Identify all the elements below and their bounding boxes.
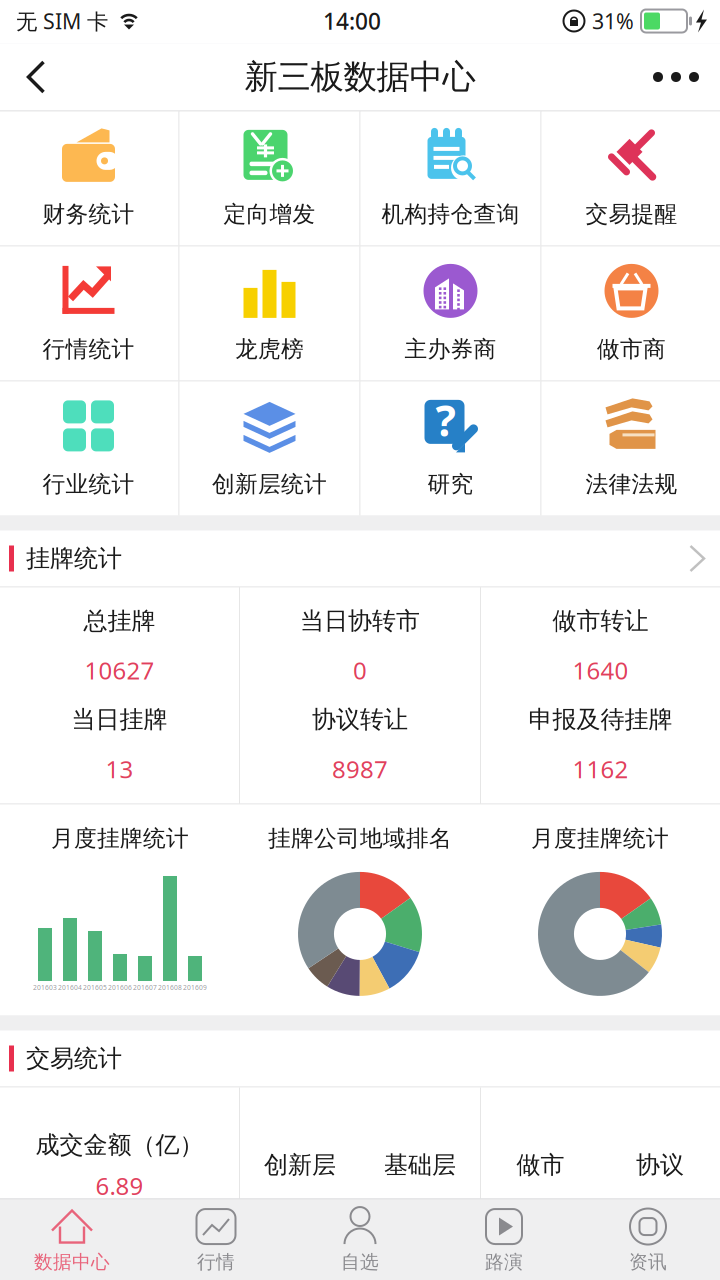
staticText: 总挂牌 [83, 606, 155, 636]
staticText: 做市商 [597, 335, 666, 363]
staticText: 行情 [197, 1250, 235, 1273]
button[interactable]: 交易统计 [0, 1030, 720, 1086]
button[interactable]: 资讯 [576, 1199, 720, 1280]
staticText: 行情统计 [42, 335, 134, 363]
staticText: 无 SIM 卡 [16, 7, 108, 35]
staticText: 财务统计 [42, 200, 134, 228]
staticText: 201604 [58, 983, 82, 992]
staticText: 申报及待挂牌 [528, 705, 672, 734]
staticText: 201609 [183, 983, 207, 992]
staticText: 6.89 [95, 1170, 143, 1201]
button[interactable]: 创新层统计 [179, 381, 359, 515]
button[interactable]: 数据中心 [0, 1199, 144, 1280]
button[interactable]: 机构持仓查询 [360, 111, 540, 245]
staticText: 201608 [158, 983, 182, 992]
staticText: 1162 [572, 753, 628, 785]
button[interactable]: 交易提醒 [541, 111, 720, 245]
staticText: 当日协转市 [300, 606, 420, 636]
staticText: 交易统计 [26, 1044, 122, 1073]
button[interactable]: 法律法规 [541, 381, 720, 515]
button[interactable]: 挂牌统计 [0, 530, 720, 586]
button[interactable]: 行情 [144, 1199, 288, 1280]
staticText: 成交金额（亿） [35, 1130, 203, 1160]
staticText: 定向增发 [223, 200, 315, 228]
staticText: 14:00 [323, 6, 381, 36]
staticText: 主办券商 [404, 335, 496, 363]
staticText: 1640 [572, 654, 628, 686]
staticText: 挂牌公司地域排名 [268, 824, 452, 852]
staticText: 0 [353, 654, 367, 686]
staticText: 8987 [332, 753, 388, 785]
staticText: 201605 [83, 983, 107, 992]
staticText: 协议 [636, 1150, 684, 1180]
staticText: 201606 [108, 983, 132, 992]
staticText: 月度挂牌统计 [531, 824, 669, 852]
staticText: 行业统计 [42, 470, 134, 498]
button[interactable]: 行业统计 [0, 381, 178, 515]
staticText: 当日挂牌 [71, 705, 167, 734]
staticText: 自选 [341, 1250, 379, 1273]
staticText: 交易提醒 [585, 200, 677, 228]
staticText: 做市 [516, 1150, 564, 1180]
staticText: 法律法规 [585, 470, 677, 498]
button[interactable]: 自选 [288, 1199, 432, 1280]
staticText: 10627 [84, 654, 154, 686]
staticText: 新三板数据中心 [244, 56, 475, 97]
staticText: 201603 [33, 983, 57, 992]
button[interactable]: 返回 [0, 43, 72, 110]
staticText: 创新层统计 [212, 470, 327, 498]
staticText: ? [435, 392, 455, 448]
staticText: 路演 [485, 1250, 523, 1273]
button[interactable]: 主办券商 [360, 246, 540, 380]
staticText: 201607 [133, 983, 157, 992]
staticText: 龙虎榜 [235, 335, 304, 363]
staticText: 31% [592, 7, 634, 35]
staticText: 创新层 [264, 1150, 336, 1180]
button[interactable]: 龙虎榜 [179, 246, 359, 380]
button[interactable]: 定向增发 [179, 111, 359, 245]
staticText: 机构持仓查询 [381, 200, 519, 228]
staticText: 资讯 [629, 1250, 667, 1273]
button[interactable]: ? [360, 381, 540, 515]
staticText: 做市转让 [552, 606, 648, 636]
staticText: 研究 [427, 470, 473, 498]
button[interactable]: 财务统计 [0, 111, 178, 245]
button[interactable]: 做市商 [541, 246, 720, 380]
button[interactable]: 路演 [432, 1199, 576, 1280]
staticText: 挂牌统计 [26, 544, 122, 573]
staticText: 数据中心 [34, 1250, 110, 1273]
staticText: 13 [105, 753, 133, 785]
staticText: 月度挂牌统计 [51, 824, 189, 852]
button[interactable]: 更多 [632, 43, 720, 110]
button[interactable]: 行情统计 [0, 246, 178, 380]
staticText: 基础层 [384, 1150, 456, 1180]
staticText: 协议转让 [312, 705, 408, 734]
